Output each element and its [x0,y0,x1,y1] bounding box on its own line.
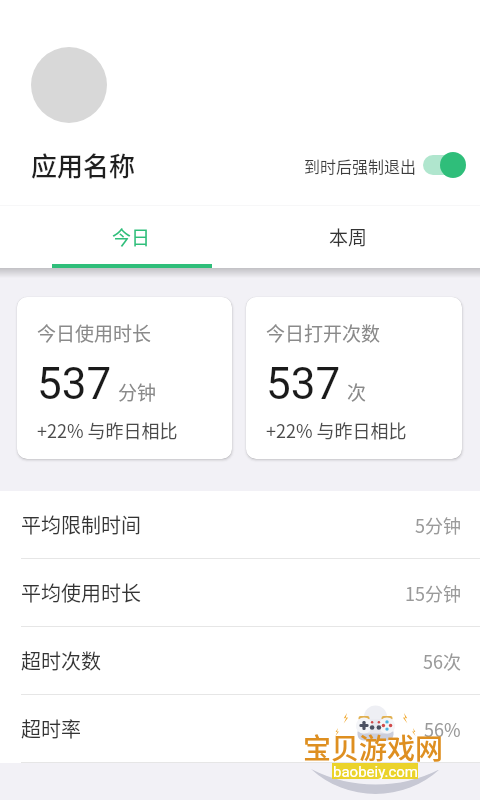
staticText: 分钟 [118,378,157,406]
staticText: 56% [424,716,461,742]
staticText: 平均限制时间 [21,510,141,539]
button[interactable]: 今日 [23,206,240,268]
staticText: +22% 与昨日相比 [37,417,178,443]
staticText: baobeiy.com [333,763,418,779]
staticText: 今日 [112,223,151,251]
staticText: 超时次数 [21,646,101,675]
button[interactable]: 到时后强制退出 [304,151,466,179]
staticText: 本周 [329,223,368,251]
button[interactable]: 平均限制时间 [0,491,480,559]
button[interactable]: 应用图标 [31,47,107,123]
staticText: 今日使用时长 [37,319,152,347]
staticText: 15分钟 [405,580,461,606]
staticText: 次 [347,378,367,406]
staticText: 应用名称 [31,146,136,184]
button[interactable]: 平均使用时长 [0,559,480,627]
other: 到时后强制退出开关 [423,151,466,179]
staticText: 宝贝游戏网 [303,727,444,768]
staticText: 537 [266,358,341,410]
button[interactable]: 超时次数 [0,627,480,695]
button[interactable]: 今日打开次数 [246,297,462,459]
staticText: 今日打开次数 [266,319,381,347]
staticText: 537 [37,358,112,410]
staticText: 56次 [423,648,461,674]
staticText: 5分钟 [415,512,461,538]
button[interactable]: 本周 [240,206,457,268]
staticText: 超时率 [21,714,81,743]
staticText: 平均使用时长 [21,578,141,607]
button[interactable]: 今日使用时长 [17,297,232,459]
staticText: 到时后强制退出 [304,154,417,177]
button[interactable]: 超时率 [0,695,480,763]
staticText: +22% 与昨日相比 [266,417,407,443]
